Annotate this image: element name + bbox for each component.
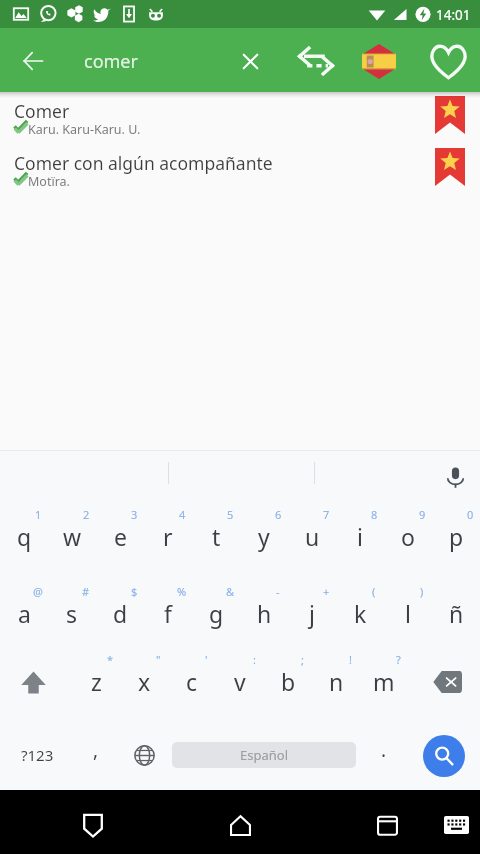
button[interactable]: c [168, 650, 216, 698]
staticText: : [253, 652, 256, 667]
staticText: ?123 [21, 745, 54, 765]
button[interactable]: , [72, 731, 120, 779]
button[interactable]: Voice input [437, 459, 473, 495]
button[interactable]: Clear text [228, 39, 272, 83]
button[interactable]: Show keyboard [432, 801, 480, 849]
staticText: 4 [179, 507, 186, 522]
staticText: 5 [227, 507, 234, 522]
staticText: % [177, 584, 187, 599]
staticText: 0 [467, 507, 474, 522]
staticText: w [63, 521, 82, 552]
staticText: comer [84, 49, 138, 74]
button[interactable]: Español [172, 742, 356, 768]
staticText: h [257, 598, 272, 629]
button[interactable]: i [336, 505, 384, 553]
staticText: Karu. Karu-Karu. U. [28, 121, 141, 138]
button[interactable]: f [144, 582, 192, 630]
button[interactable]: l [384, 582, 432, 630]
button[interactable]: q [0, 505, 48, 553]
button[interactable]: Recent apps [363, 801, 411, 849]
staticText: $ [131, 584, 138, 599]
staticText: ? [396, 652, 401, 667]
staticText: u [305, 521, 320, 552]
staticText: a [18, 598, 31, 629]
button[interactable]: Comer con algún acompañante [0, 144, 480, 196]
staticText: x [138, 666, 151, 697]
button[interactable]: j [288, 582, 336, 630]
button[interactable]: a [0, 582, 48, 630]
button[interactable]: r [144, 505, 192, 553]
staticText: ñ [449, 598, 464, 629]
staticText: , [93, 737, 99, 763]
staticText: 7 [323, 507, 330, 522]
staticText: b [281, 666, 296, 697]
staticText: Español [240, 746, 288, 764]
button[interactable]: ñ [432, 582, 480, 630]
staticText: q [17, 521, 32, 552]
button[interactable]: g [192, 582, 240, 630]
button[interactable]: z [72, 650, 120, 698]
staticText: 9 [419, 507, 426, 522]
button[interactable]: Select language [357, 39, 401, 83]
staticText: ; [301, 652, 304, 667]
button[interactable]: k [336, 582, 384, 630]
button[interactable]: p [432, 505, 480, 553]
button[interactable]: n [312, 650, 360, 698]
button[interactable]: e [96, 505, 144, 553]
button[interactable]: Back [9, 37, 57, 85]
button[interactable]: Swap languages [294, 39, 338, 83]
button[interactable]: u [288, 505, 336, 553]
staticText: s [66, 598, 78, 629]
staticText: # [82, 584, 90, 599]
staticText: t [212, 521, 221, 552]
button[interactable]: Favorites [426, 39, 470, 83]
button[interactable]: o [384, 505, 432, 553]
button[interactable]: h [240, 582, 288, 630]
staticText: g [209, 598, 224, 629]
button[interactable]: Back [69, 801, 117, 849]
button[interactable]: Home [216, 801, 264, 849]
staticText: d [113, 598, 128, 629]
staticText: 2 [83, 507, 90, 522]
staticText: r [163, 521, 173, 552]
button[interactable]: s [48, 582, 96, 630]
staticText: y [258, 521, 270, 552]
button[interactable]: x [120, 650, 168, 698]
staticText: c [186, 666, 198, 697]
button[interactable]: Shift [9, 658, 57, 706]
button[interactable]: b [264, 650, 312, 698]
staticText: 8 [371, 507, 378, 522]
button[interactable]: y [240, 505, 288, 553]
button[interactable]: Comer [0, 92, 480, 144]
button[interactable]: Change keyboard language [120, 731, 168, 779]
staticText: z [91, 666, 102, 697]
staticText: @ [33, 584, 43, 599]
button[interactable]: d [96, 582, 144, 630]
staticText: f [164, 598, 172, 629]
staticText: k [354, 598, 367, 629]
staticText: . [381, 737, 387, 763]
staticText: e [114, 521, 127, 552]
staticText: 14:01 [436, 6, 471, 24]
button[interactable]: w [48, 505, 96, 553]
staticText: - [276, 584, 280, 599]
button[interactable]: Search [423, 735, 465, 777]
staticText: p [449, 521, 464, 552]
staticText: " [156, 652, 161, 667]
staticText: + [323, 584, 330, 599]
staticText: Comer [14, 99, 70, 123]
button[interactable]: ?123 [7, 731, 67, 779]
button[interactable]: Backspace [423, 658, 471, 706]
button[interactable]: m [360, 650, 408, 698]
staticText: ( [372, 584, 376, 599]
staticText: n [329, 666, 344, 697]
button[interactable]: v [216, 650, 264, 698]
button[interactable]: t [192, 505, 240, 553]
button[interactable]: . [360, 731, 408, 779]
staticText: m [373, 666, 395, 697]
staticText: ! [349, 652, 352, 667]
staticText: i [357, 521, 363, 552]
staticText: Comer con algún acompañante [14, 151, 273, 175]
staticText: 1 [35, 507, 42, 522]
staticText: j [309, 598, 315, 629]
